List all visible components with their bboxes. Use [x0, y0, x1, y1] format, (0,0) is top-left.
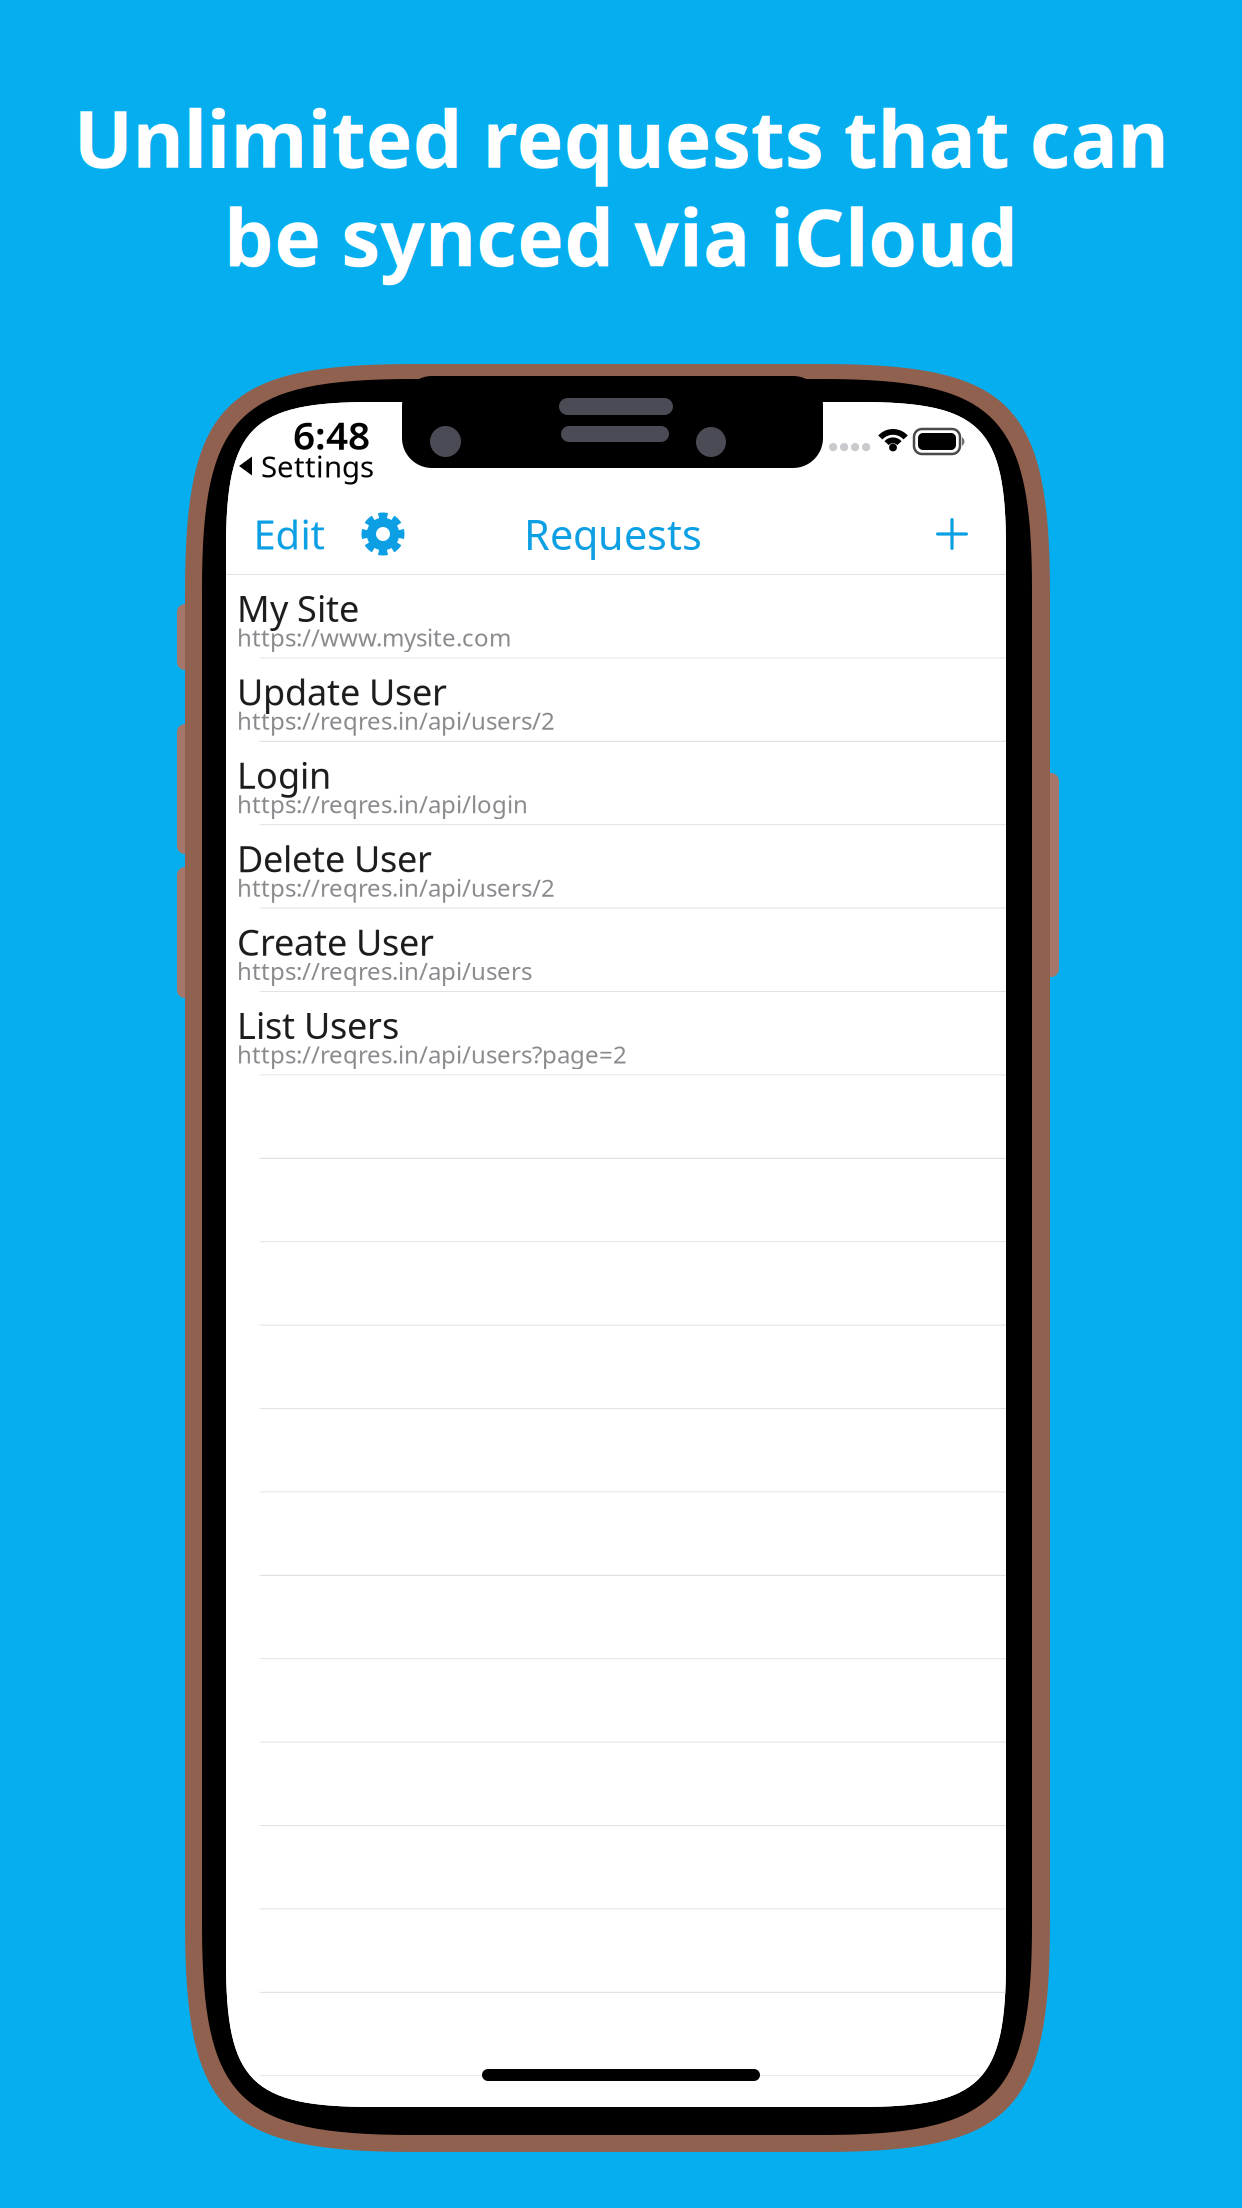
- staticText: Update User: [237, 668, 447, 715]
- staticText: Login: [237, 751, 331, 799]
- button[interactable]: Create User: [226, 909, 1006, 992]
- staticText: https://reqres.in/api/users?page=2: [237, 1038, 627, 1070]
- staticText: List Users: [237, 1001, 399, 1049]
- button[interactable]: Update User: [226, 659, 1006, 742]
- staticText: 6:48: [293, 409, 370, 460]
- button[interactable]: Settings: [226, 446, 586, 486]
- staticText: My Site: [237, 584, 359, 632]
- button[interactable]: My Site: [226, 575, 1006, 659]
- staticText: Delete User: [237, 834, 432, 882]
- button[interactable]: Add request: [912, 494, 992, 574]
- staticText: Settings: [261, 446, 374, 485]
- button[interactable]: Requests: [483, 494, 743, 574]
- staticText: Create User: [237, 918, 434, 966]
- staticText: be synced via iCloud: [224, 183, 1018, 288]
- button[interactable]: Edit: [243, 494, 335, 574]
- staticText: Unlimited requests that can: [73, 85, 1168, 189]
- button[interactable]: Settings: [348, 494, 418, 574]
- staticText: https://reqres.in/api/users: [237, 955, 532, 987]
- button[interactable]: Delete User: [226, 825, 1006, 909]
- staticText: https://reqres.in/api/login: [237, 788, 528, 820]
- staticText: Requests: [524, 507, 702, 561]
- staticText: Edit: [253, 507, 324, 560]
- staticText: https://reqres.in/api/users/2: [237, 871, 555, 903]
- staticText: https://reqres.in/api/users/2: [237, 705, 555, 736]
- button[interactable]: Login: [226, 742, 1006, 825]
- staticText: https://www.mysite.com: [237, 621, 511, 653]
- button[interactable]: List Users: [226, 992, 1006, 1076]
